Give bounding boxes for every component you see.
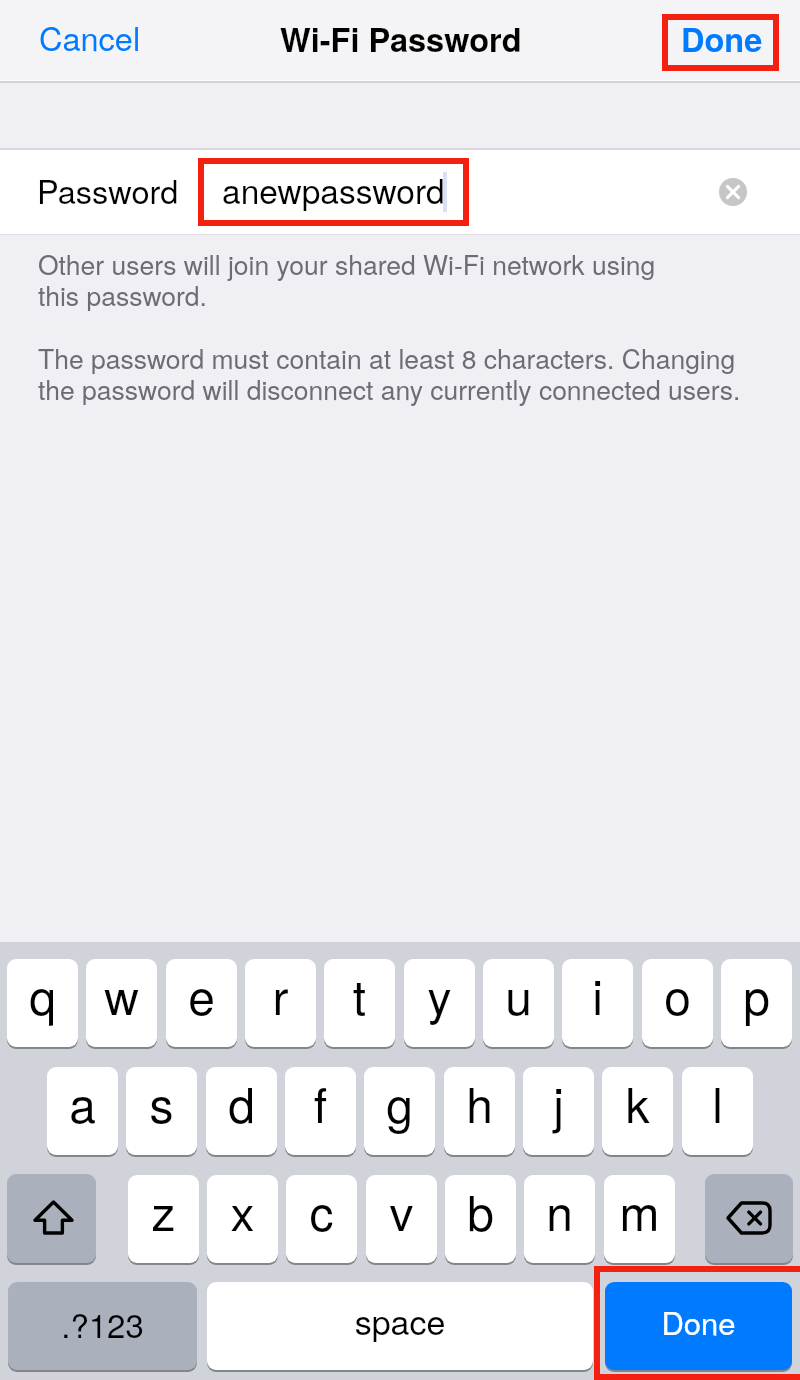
button[interactable]: b — [445, 1175, 516, 1263]
staticText: p — [721, 960, 792, 1029]
button[interactable]: v — [366, 1175, 437, 1263]
button[interactable]: z — [128, 1175, 199, 1263]
staticText: Done — [681, 15, 763, 62]
button[interactable]: x — [207, 1175, 278, 1263]
staticText: b — [445, 1176, 516, 1245]
button[interactable]: r — [245, 959, 316, 1047]
staticText: q — [7, 960, 78, 1029]
staticText: e — [166, 960, 237, 1029]
button[interactable]: o — [642, 959, 713, 1047]
staticText: k — [602, 1068, 673, 1137]
button[interactable]: c — [286, 1175, 357, 1263]
button[interactable]: d — [206, 1067, 277, 1155]
button[interactable]: f — [285, 1067, 356, 1155]
button[interactable]: space — [207, 1282, 593, 1370]
staticText: i — [562, 960, 633, 1029]
button[interactable]: y — [404, 959, 475, 1047]
staticText: space — [207, 1296, 593, 1345]
button[interactable]: e — [166, 959, 237, 1047]
button[interactable]: p — [721, 959, 792, 1047]
button[interactable]: i — [562, 959, 633, 1047]
button[interactable]: Done — [668, 20, 773, 65]
staticText: h — [444, 1068, 515, 1137]
staticText: d — [206, 1068, 277, 1137]
button[interactable]: k — [602, 1067, 673, 1155]
staticText: .?123 — [8, 1300, 197, 1347]
staticText: Cancel — [39, 14, 141, 61]
staticText: y — [404, 960, 475, 1029]
staticText: the password will disconnect any current… — [38, 370, 741, 408]
staticText: w — [86, 960, 157, 1029]
staticText: o — [642, 960, 713, 1029]
button[interactable]: h — [444, 1067, 515, 1155]
button[interactable]: s — [126, 1067, 197, 1155]
staticText: n — [524, 1176, 595, 1245]
staticText: z — [128, 1176, 199, 1245]
button[interactable]: a — [47, 1067, 118, 1155]
button[interactable]: l — [682, 1067, 753, 1155]
staticText: Other users will join your shared Wi-Fi … — [38, 245, 656, 283]
button[interactable]: anewpassword — [204, 164, 463, 220]
staticText: l — [682, 1068, 753, 1137]
staticText: Done — [605, 1299, 792, 1343]
staticText: u — [483, 960, 554, 1029]
staticText: anewpassword — [222, 166, 445, 214]
staticText: this password. — [38, 276, 207, 314]
staticText: s — [126, 1068, 197, 1137]
staticText: r — [245, 960, 316, 1029]
staticText: g — [364, 1068, 435, 1137]
staticText: Wi-Fi Password — [280, 15, 522, 62]
button[interactable]: n — [524, 1175, 595, 1263]
button[interactable]: j — [523, 1067, 594, 1155]
staticText: j — [523, 1068, 594, 1137]
button[interactable]: t — [324, 959, 395, 1047]
button[interactable]: u — [483, 959, 554, 1047]
button[interactable]: Done — [605, 1282, 792, 1370]
button[interactable]: q — [7, 959, 78, 1047]
button[interactable]: Backspace — [705, 1174, 793, 1263]
staticText: Password — [37, 167, 179, 214]
staticText: m — [604, 1176, 675, 1245]
button[interactable]: w — [86, 959, 157, 1047]
staticText: v — [366, 1176, 437, 1245]
button[interactable]: m — [604, 1175, 675, 1263]
button[interactable]: Clear text — [713, 172, 753, 212]
staticText: t — [324, 960, 395, 1029]
button[interactable]: g — [364, 1067, 435, 1155]
button[interactable]: Shift — [7, 1174, 96, 1263]
button[interactable]: .?123 — [8, 1282, 197, 1370]
staticText: f — [285, 1068, 356, 1137]
staticText: The password must contain at least 8 cha… — [38, 339, 736, 377]
staticText: a — [47, 1068, 118, 1137]
button[interactable]: Cancel — [24, 8, 154, 72]
staticText: c — [286, 1176, 357, 1245]
staticText: x — [207, 1176, 278, 1245]
